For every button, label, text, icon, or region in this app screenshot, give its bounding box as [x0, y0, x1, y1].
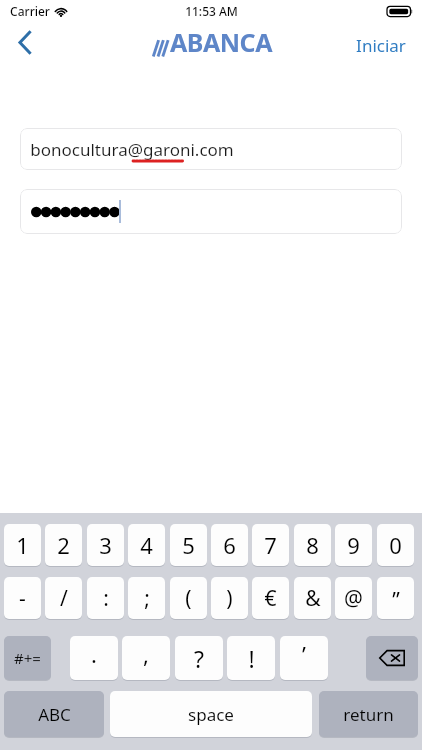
staticText: 8: [306, 530, 319, 560]
button[interactable]: -: [4, 577, 41, 619]
staticText: ,: [143, 639, 149, 669]
button[interactable]: 6: [211, 524, 248, 566]
staticText: (: [185, 584, 192, 613]
staticText: ;: [144, 584, 150, 613]
staticText: 5: [182, 530, 195, 560]
button[interactable]: 9: [335, 524, 372, 566]
button[interactable]: return: [319, 691, 418, 737]
staticText: 7: [264, 530, 277, 560]
staticText: ’: [302, 639, 306, 669]
staticText: 0: [389, 530, 402, 560]
staticText: /: [60, 584, 68, 613]
button[interactable]: Backspace: [366, 636, 418, 680]
button[interactable]: (: [170, 577, 207, 619]
button[interactable]: ,: [122, 636, 170, 680]
button[interactable]: 4: [128, 524, 165, 566]
staticText: -: [19, 584, 26, 613]
button[interactable]: ?: [175, 636, 223, 680]
button[interactable]: ”: [377, 577, 414, 619]
button[interactable]: space: [110, 691, 312, 737]
button[interactable]: 3: [87, 524, 124, 566]
staticText: 2: [57, 530, 70, 560]
staticText: 6: [223, 530, 236, 560]
staticText: 9: [347, 530, 360, 560]
button[interactable]: €: [252, 577, 289, 619]
staticText: :: [103, 584, 109, 613]
button[interactable]: &: [294, 577, 331, 619]
staticText: ABC: [38, 703, 71, 726]
staticText: Carrier: [10, 3, 50, 19]
button[interactable]: Iniciar: [346, 27, 416, 64]
staticText: €: [264, 584, 277, 613]
staticText: 3: [99, 530, 112, 560]
button[interactable]: [20, 189, 402, 234]
button[interactable]: .: [70, 636, 118, 680]
button[interactable]: /: [45, 577, 82, 619]
staticText: 11:53 AM: [185, 3, 238, 19]
button[interactable]: ’: [280, 636, 328, 680]
staticText: @: [344, 584, 363, 613]
button[interactable]: 2: [45, 524, 82, 566]
button[interactable]: ABC: [4, 691, 104, 737]
button[interactable]: ;: [128, 577, 165, 619]
button[interactable]: 1: [4, 524, 41, 566]
staticText: ABANCA: [170, 25, 272, 59]
staticText: .: [91, 639, 97, 669]
button[interactable]: @: [335, 577, 372, 619]
button[interactable]: 7: [252, 524, 289, 566]
staticText: space: [188, 703, 234, 726]
button[interactable]: Back: [2, 20, 48, 64]
staticText: bonocultura@garoni.com: [30, 138, 234, 161]
button[interactable]: #+=: [4, 636, 51, 680]
staticText: 1: [16, 530, 29, 560]
staticText: !: [248, 643, 255, 674]
button[interactable]: ): [211, 577, 248, 619]
staticText: ”: [392, 586, 400, 615]
button[interactable]: !: [227, 636, 275, 680]
button[interactable]: 0: [377, 524, 414, 566]
staticText: #+=: [14, 648, 41, 668]
staticText: Iniciar: [356, 34, 406, 57]
button[interactable]: 8: [294, 524, 331, 566]
button[interactable]: bonocultura@garoni.com: [20, 128, 402, 170]
staticText: return: [343, 703, 394, 726]
staticText: ): [226, 584, 233, 613]
staticText: ?: [194, 643, 204, 674]
button[interactable]: 5: [170, 524, 207, 566]
button[interactable]: :: [87, 577, 124, 619]
staticText: 4: [140, 530, 153, 560]
staticText: &: [305, 584, 321, 613]
